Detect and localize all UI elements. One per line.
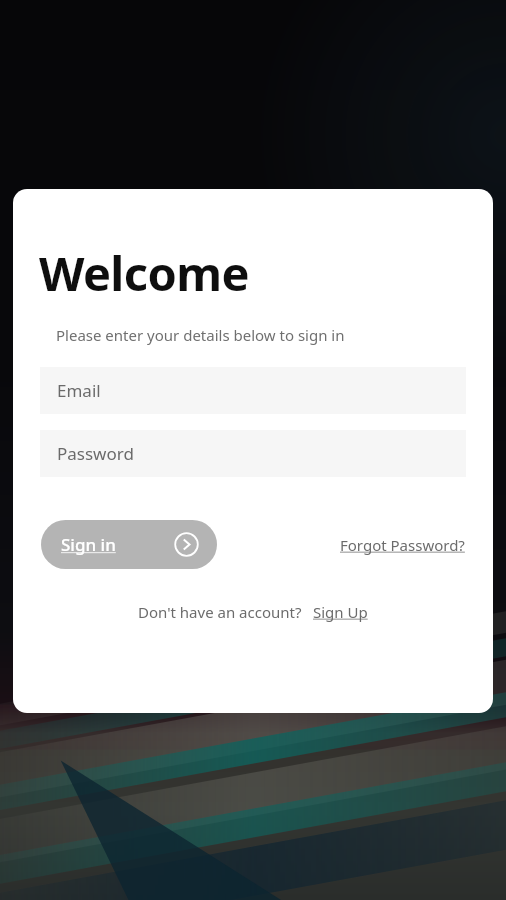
button[interactable]: Sign in xyxy=(41,520,217,569)
staticText: Password xyxy=(57,442,134,465)
staticText: Forgot Password? xyxy=(340,535,465,555)
staticText: Please enter your details below to sign … xyxy=(56,325,345,345)
other: Sign in xyxy=(174,532,199,557)
button[interactable]: Sign Up xyxy=(313,602,368,622)
staticText: Welcome xyxy=(39,241,249,305)
button[interactable]: Email xyxy=(40,367,466,414)
staticText: Sign Up xyxy=(313,602,368,622)
staticText: Email xyxy=(57,379,101,402)
staticText: Sign in xyxy=(61,533,116,556)
button[interactable]: Forgot Password? xyxy=(340,535,465,555)
staticText: Don't have an account? xyxy=(138,602,302,622)
button[interactable]: Password xyxy=(40,430,466,477)
